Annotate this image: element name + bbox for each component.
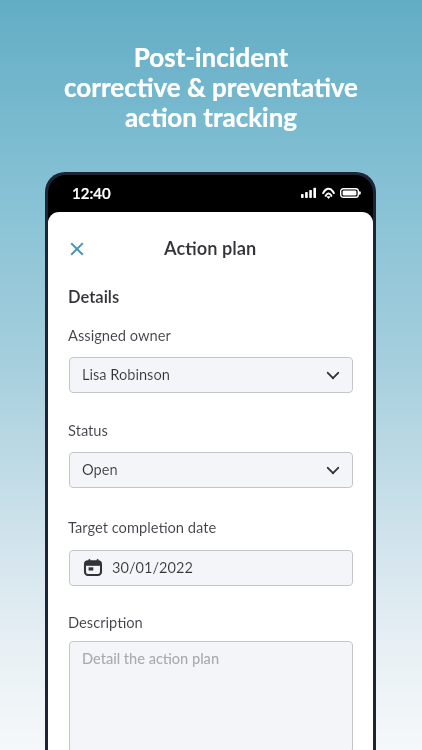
- staticText: Detail the action plan: [82, 650, 220, 668]
- button[interactable]: 30/01/2022: [69, 550, 353, 586]
- staticText: Details: [68, 287, 120, 307]
- button[interactable]: Detail the action plan: [69, 641, 353, 750]
- button[interactable]: Open: [69, 452, 353, 488]
- staticText: 30/01/2022: [112, 559, 193, 577]
- staticText: Open: [82, 461, 118, 479]
- staticText: Action plan: [164, 237, 257, 259]
- staticText: 12:40: [72, 184, 111, 202]
- staticText: Description: [68, 613, 143, 631]
- staticText: Lisa Robinson: [82, 366, 170, 384]
- staticText: Status: [68, 421, 108, 439]
- button[interactable]: Close: [56, 228, 98, 270]
- staticText: Target completion date: [68, 518, 217, 536]
- button[interactable]: Lisa Robinson: [69, 357, 353, 393]
- staticText: Post-incident corrective & preventative …: [64, 41, 358, 132]
- staticText: Assigned owner: [68, 326, 171, 344]
